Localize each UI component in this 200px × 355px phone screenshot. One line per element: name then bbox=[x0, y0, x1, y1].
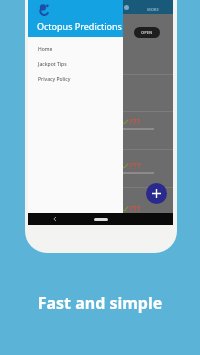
staticText: ??? bbox=[129, 203, 141, 214]
button[interactable]: OPEN bbox=[134, 27, 160, 38]
button[interactable]: Jackpot Tips bbox=[28, 57, 123, 72]
staticText: OPEN bbox=[141, 30, 153, 35]
staticText: ??? bbox=[129, 160, 141, 171]
button[interactable]: Home bbox=[28, 42, 123, 57]
staticText: ??? bbox=[129, 116, 141, 127]
staticText: Jackpot Tips bbox=[38, 61, 67, 68]
button[interactable]: Privacy Policy bbox=[28, 72, 123, 87]
staticText: Privacy Policy bbox=[38, 76, 71, 83]
button[interactable]: Add prediction bbox=[146, 183, 167, 204]
staticText: Octopus Predictions bbox=[37, 20, 122, 32]
other: Back bbox=[53, 217, 57, 221]
staticText: Home bbox=[38, 46, 53, 53]
staticText: Fast and simple bbox=[0, 292, 200, 314]
other: Home bbox=[94, 218, 108, 221]
staticText: MORE bbox=[147, 7, 159, 12]
